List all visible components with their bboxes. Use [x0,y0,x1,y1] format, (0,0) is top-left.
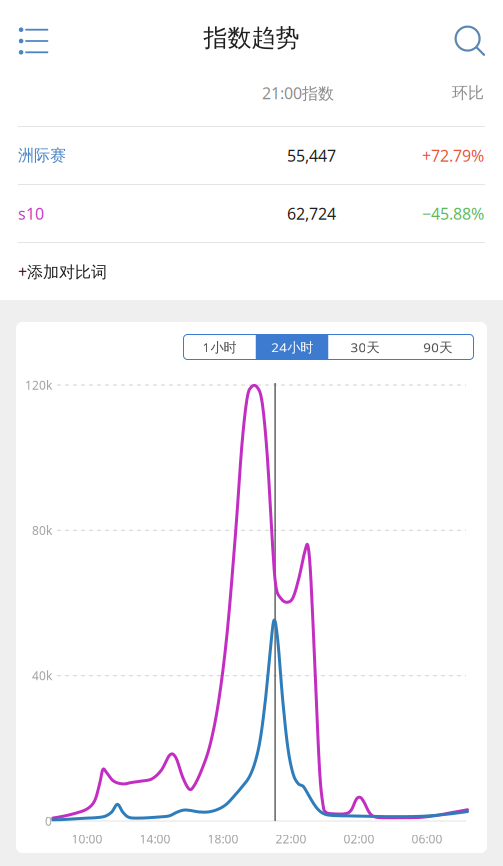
button[interactable]: 90天 [401,334,474,360]
staticText: 24小时 [271,338,313,356]
button[interactable]: Menu [0,12,63,63]
staticText: s10 [18,203,44,224]
staticText: 30天 [350,338,379,356]
staticText: 指数趋势 [203,23,299,53]
staticText: 40k [32,668,52,684]
staticText: −45.88% [422,203,484,224]
staticText: 80k [32,522,52,538]
staticText: 14:00 [139,831,170,847]
staticText: 21:00指数 [262,82,334,104]
staticText: +72.79% [422,145,484,166]
staticText: 55,447 [287,145,336,166]
staticText: 90天 [423,338,452,356]
staticText: 0 [45,813,52,829]
staticText: 环比 [452,83,484,103]
staticText: 10:00 [71,831,102,847]
button[interactable]: s10 [0,185,503,242]
staticText: 洲际赛 [18,146,66,165]
button[interactable]: 1小时 [183,334,256,360]
staticText: 120k [25,377,52,393]
button[interactable]: 24小时 [256,334,329,360]
staticText: 02:00 [343,831,374,847]
button[interactable]: 30天 [328,334,401,360]
staticText: 1小时 [202,338,236,356]
staticText: 18:00 [207,831,238,847]
staticText: 62,724 [287,203,336,224]
staticText: 06:00 [411,831,442,847]
button[interactable]: Search [441,7,503,69]
button[interactable]: +添加对比词 [0,243,503,300]
staticText: 22:00 [275,831,306,847]
button[interactable]: 洲际赛 [0,127,503,184]
staticText: +添加对比词 [18,261,107,282]
